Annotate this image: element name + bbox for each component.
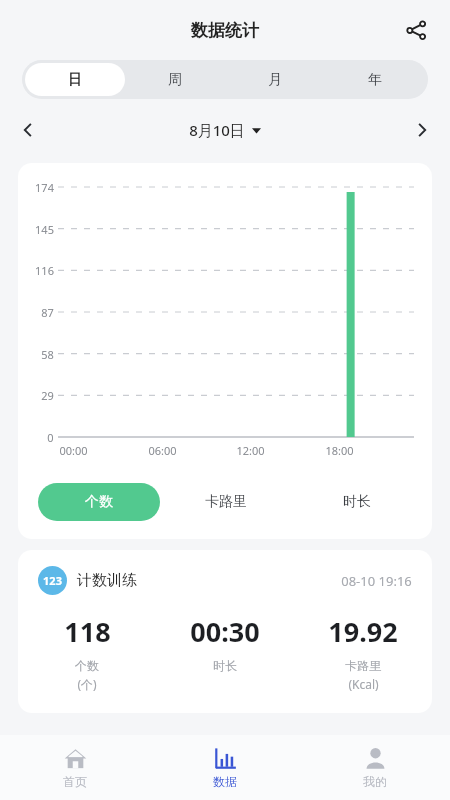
staticText: 06:00 (148, 443, 177, 458)
staticText: 12:00 (236, 443, 265, 458)
staticText: 周 (168, 71, 182, 89)
button[interactable]: 个数 (38, 483, 160, 521)
staticText: 时长 (213, 658, 237, 673)
staticText: 00:30 (190, 613, 260, 650)
button[interactable]: 年 (325, 63, 425, 96)
button[interactable]: 首页 (0, 735, 150, 800)
staticText: 0 (47, 430, 54, 445)
staticText: 时长 (343, 493, 371, 511)
button[interactable]: 月 (225, 63, 325, 96)
staticText: (个) (77, 676, 97, 692)
staticText: 145 (35, 222, 54, 237)
staticText: 8月10日 (189, 120, 245, 140)
staticText: 18:00 (325, 443, 354, 458)
staticText: 计数训练 (77, 571, 137, 590)
staticText: 19.92 (328, 613, 398, 650)
staticText: 个数 (85, 493, 113, 511)
staticText: 数据 (213, 774, 237, 789)
button[interactable]: Share (396, 10, 436, 50)
staticText: 卡路里 (345, 658, 381, 673)
staticText: 卡路里 (205, 493, 247, 511)
staticText: 数据统计 (191, 20, 259, 41)
button[interactable]: 8月10日 (189, 120, 261, 140)
staticText: 123 (43, 573, 62, 588)
button[interactable]: 123 (18, 550, 432, 713)
staticText: 29 (41, 388, 54, 403)
staticText: 首页 (63, 774, 87, 789)
staticText: 月 (268, 71, 282, 89)
staticText: 08-10 19:16 (341, 572, 412, 590)
staticText: 00:00 (59, 443, 88, 458)
button[interactable]: 日 (25, 63, 125, 96)
staticText: 87 (41, 305, 54, 320)
button[interactable]: 时长 (291, 483, 422, 521)
button[interactable]: 数据 (150, 735, 300, 800)
staticText: 年 (368, 71, 382, 89)
staticText: (Kcal) (348, 676, 379, 692)
button[interactable]: 卡路里 (160, 483, 291, 521)
staticText: 118 (64, 613, 111, 650)
staticText: 日 (68, 71, 82, 89)
button[interactable]: 我的 (300, 735, 450, 800)
staticText: 我的 (363, 774, 387, 789)
staticText: 174 (35, 180, 54, 195)
staticText: 116 (35, 263, 54, 278)
button[interactable]: 周 (125, 63, 225, 96)
staticText: 个数 (75, 658, 99, 673)
staticText: 58 (41, 347, 54, 362)
button[interactable]: Next day (402, 110, 442, 150)
button[interactable]: Previous day (8, 110, 48, 150)
